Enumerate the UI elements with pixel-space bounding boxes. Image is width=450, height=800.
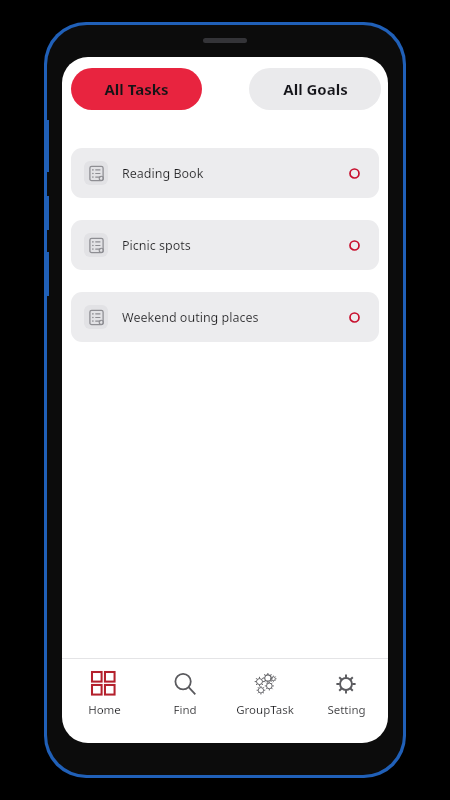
staticText: Find: [173, 702, 197, 718]
button[interactable]: Mark complete: [341, 304, 367, 330]
button[interactable]: Home: [65, 659, 143, 743]
button[interactable]: Mark complete: [341, 232, 367, 258]
button[interactable]: Find: [146, 659, 224, 743]
staticText: Home: [88, 702, 121, 718]
staticText: Reading Book: [122, 165, 204, 182]
button[interactable]: Reading Book: [71, 148, 379, 198]
button[interactable]: Picnic spots: [71, 220, 379, 270]
button[interactable]: Weekend outing places: [71, 292, 379, 342]
button[interactable]: Mark complete: [341, 160, 367, 186]
staticText: All Goals: [283, 79, 348, 99]
button[interactable]: GroupTask: [226, 659, 304, 743]
staticText: Picnic spots: [122, 237, 191, 254]
staticText: All Tasks: [104, 79, 169, 99]
button[interactable]: Setting: [307, 659, 385, 743]
staticText: Setting: [327, 702, 366, 718]
staticText: Weekend outing places: [122, 309, 259, 326]
staticText: GroupTask: [236, 702, 294, 718]
button[interactable]: All Tasks: [71, 68, 202, 110]
button[interactable]: All Goals: [249, 68, 381, 110]
